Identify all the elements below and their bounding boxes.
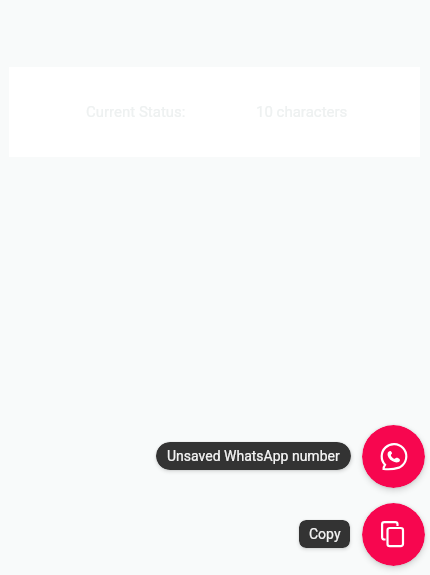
button[interactable]: Unsaved WhatsApp number — [156, 442, 351, 470]
button[interactable]: Copy — [299, 520, 350, 548]
button[interactable]: Message unsaved WhatsApp number — [362, 425, 425, 488]
staticText: Current Status: — [86, 103, 186, 121]
staticText: Copy — [309, 526, 341, 542]
staticText: 10 characters — [256, 103, 348, 121]
button[interactable]: Copy — [362, 503, 425, 566]
staticText: Unsaved WhatsApp number — [167, 448, 340, 464]
